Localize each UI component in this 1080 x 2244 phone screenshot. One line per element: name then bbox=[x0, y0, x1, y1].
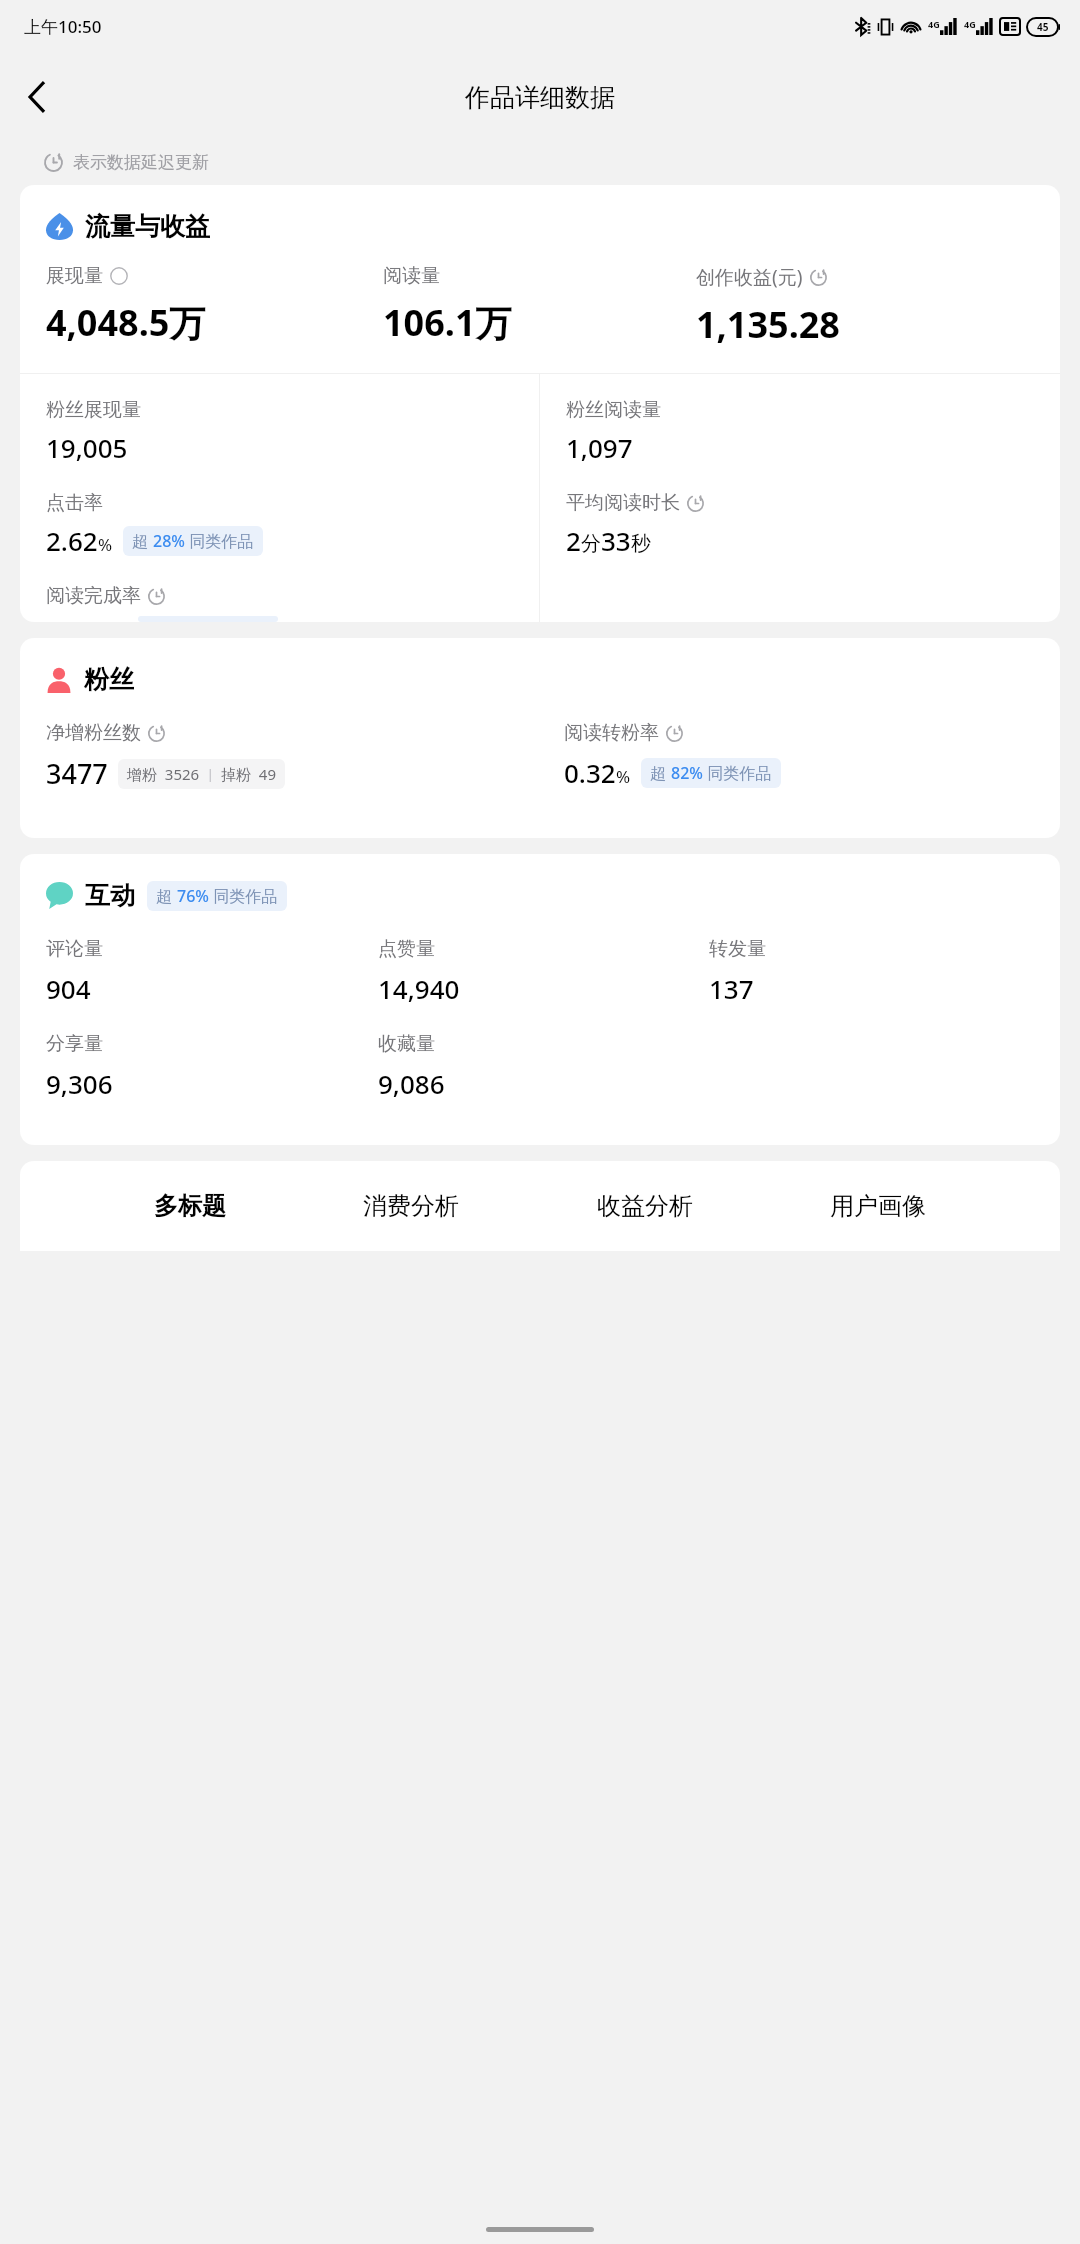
button[interactable]: 返回 bbox=[8, 69, 64, 125]
staticText: 消费分析 bbox=[363, 1191, 459, 1221]
button[interactable]: 用户画像 bbox=[826, 1187, 930, 1225]
staticText: 展现量 bbox=[46, 264, 103, 288]
staticText: 阅读转粉率 bbox=[564, 721, 659, 745]
staticText: 超 bbox=[650, 762, 671, 784]
staticText: 0.32 bbox=[564, 755, 616, 790]
staticText: 4G bbox=[928, 18, 940, 30]
staticText: 超 bbox=[132, 530, 153, 552]
staticText: 掉粉 49 bbox=[221, 764, 276, 784]
staticText: 33 bbox=[601, 523, 631, 558]
staticText: 14,940 bbox=[378, 971, 460, 1006]
button[interactable]: 说明 bbox=[110, 267, 128, 285]
staticText: 1,135.28 bbox=[696, 300, 840, 349]
staticText: 上午10:50 bbox=[24, 15, 102, 38]
staticText: 分享量 bbox=[46, 1032, 103, 1056]
staticText: 3477 bbox=[46, 755, 108, 792]
staticText: 转发量 bbox=[709, 937, 766, 961]
staticText: 19,005 bbox=[46, 430, 128, 465]
staticText: 同类作品 bbox=[703, 762, 772, 784]
staticText: 创作收益(元) bbox=[696, 264, 803, 290]
staticText: 76% bbox=[177, 885, 209, 907]
staticText: 4,048.5万 bbox=[46, 298, 206, 347]
staticText: 904 bbox=[46, 971, 91, 1006]
staticText: 粉丝阅读量 bbox=[566, 398, 661, 422]
staticText: 阅读量 bbox=[383, 264, 440, 288]
staticText: 超 bbox=[156, 885, 177, 907]
button[interactable]: 收益分析 bbox=[593, 1187, 697, 1225]
staticText: 收藏量 bbox=[378, 1032, 435, 1056]
staticText: 9,306 bbox=[46, 1066, 113, 1101]
staticText: 点赞量 bbox=[378, 937, 435, 961]
staticText: 评论量 bbox=[46, 937, 103, 961]
staticText: % bbox=[616, 765, 631, 788]
staticText: 秒 bbox=[631, 531, 651, 556]
button[interactable]: 多标题 bbox=[150, 1187, 230, 1225]
staticText: 用户画像 bbox=[830, 1191, 926, 1221]
staticText: 阅读完成率 bbox=[46, 584, 141, 608]
staticText: 作品详细数据 bbox=[465, 82, 615, 113]
button[interactable]: 消费分析 bbox=[359, 1187, 463, 1225]
staticText: % bbox=[98, 533, 113, 556]
staticText: 2.62 bbox=[46, 523, 98, 558]
staticText: 表示数据延迟更新 bbox=[73, 152, 209, 173]
staticText: 同类作品 bbox=[185, 530, 254, 552]
staticText: 137 bbox=[709, 971, 754, 1006]
staticText: 粉丝展现量 bbox=[46, 398, 141, 422]
staticText: 净增粉丝数 bbox=[46, 721, 141, 745]
staticText: 增粉 3526 bbox=[127, 764, 200, 784]
staticText: 分 bbox=[581, 531, 601, 556]
staticText: 106.1万 bbox=[383, 298, 512, 347]
staticText: 1,097 bbox=[566, 430, 633, 465]
staticText: 平均阅读时长 bbox=[566, 491, 680, 515]
staticText: 2 bbox=[566, 523, 581, 558]
staticText: 流量与收益 bbox=[85, 211, 210, 242]
staticText: 收益分析 bbox=[597, 1191, 693, 1221]
staticText: | bbox=[200, 765, 221, 783]
staticText: 45 bbox=[1037, 20, 1049, 34]
staticText: 同类作品 bbox=[209, 885, 278, 907]
staticText: 粉丝 bbox=[84, 664, 134, 695]
staticText: 9,086 bbox=[378, 1066, 445, 1101]
staticText: 点击率 bbox=[46, 491, 103, 515]
staticText: 28% bbox=[153, 530, 185, 552]
staticText: 互动 bbox=[85, 880, 135, 911]
staticText: 82% bbox=[671, 762, 703, 784]
staticText: 4G bbox=[964, 18, 976, 30]
staticText: 多标题 bbox=[154, 1191, 226, 1221]
